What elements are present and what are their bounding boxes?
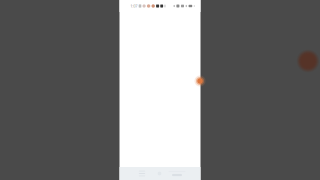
button[interactable]: Back xyxy=(167,168,187,179)
button[interactable]: Recent apps xyxy=(135,168,149,179)
staticText: 1:07 xyxy=(130,3,137,9)
